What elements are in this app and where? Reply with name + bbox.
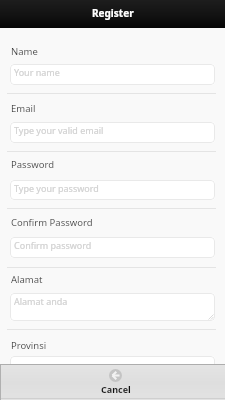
button[interactable]: Type your password: [10, 180, 215, 200]
button[interactable]: Your name: [10, 64, 215, 85]
staticText: Type your password: [14, 182, 99, 194]
staticText: Your name: [14, 66, 60, 78]
staticText: Type your valid email: [14, 124, 104, 136]
staticText: Email: [11, 102, 36, 115]
button[interactable]: Alamat anda: [10, 293, 215, 321]
staticText: Confirm Password: [11, 216, 93, 229]
staticText: Password: [11, 158, 54, 171]
staticText: Cancel: [101, 383, 131, 395]
staticText: Alamat anda: [14, 295, 68, 307]
button[interactable]: [10, 356, 215, 377]
other: Cancel: [109, 369, 122, 382]
button[interactable]: Confirm password: [10, 237, 215, 258]
staticText: Confirm password: [14, 239, 92, 251]
staticText: Register: [92, 6, 134, 20]
staticText: Name: [11, 45, 38, 58]
staticText: Alamat: [11, 273, 43, 286]
button[interactable]: Cancel: [0, 365, 225, 400]
button[interactable]: Type your valid email: [10, 122, 215, 143]
staticText: Provinsi: [11, 339, 47, 352]
